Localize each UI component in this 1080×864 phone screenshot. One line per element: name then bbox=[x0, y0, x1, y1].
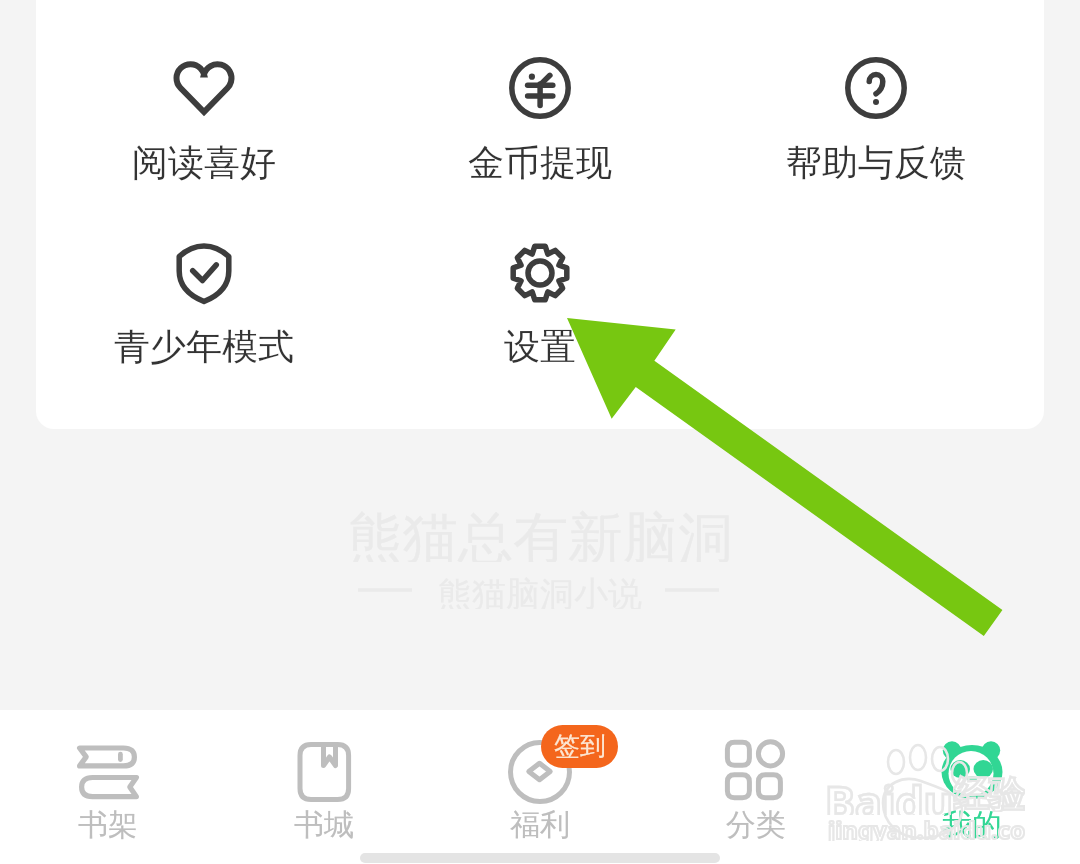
staticText: 分类 bbox=[726, 806, 786, 844]
staticText: 福利 bbox=[510, 806, 570, 844]
staticText: 我的 bbox=[942, 806, 1002, 844]
button[interactable]: 青少年模式 bbox=[36, 221, 372, 372]
staticText: 熊猫总有新脑洞 bbox=[348, 504, 733, 562]
staticText: 签到 bbox=[554, 730, 606, 763]
button[interactable]: 福利 bbox=[432, 710, 648, 864]
staticText: 经验 bbox=[953, 772, 1025, 812]
staticText: 书城 bbox=[294, 806, 354, 844]
button[interactable]: 书城 bbox=[216, 710, 432, 864]
button[interactable]: 书架 bbox=[0, 710, 216, 864]
staticText: jingyan.baidu.com bbox=[828, 813, 1038, 841]
button[interactable]: 我的 bbox=[864, 710, 1080, 864]
staticText: 设置 bbox=[504, 324, 576, 369]
staticText: 金币提现 bbox=[468, 140, 612, 185]
staticText: 阅读喜好 bbox=[132, 140, 276, 185]
button[interactable]: 金币提现 bbox=[372, 36, 708, 188]
staticText: 青少年模式 bbox=[114, 324, 294, 369]
button[interactable]: 分类 bbox=[648, 710, 864, 864]
staticText: 书架 bbox=[78, 806, 138, 844]
staticText: 帮助与反馈 bbox=[786, 140, 966, 185]
staticText: 熊猫脑洞小说 bbox=[438, 573, 642, 609]
button[interactable]: 阅读喜好 bbox=[36, 36, 372, 188]
button[interactable]: 签到 check in bbox=[541, 725, 618, 768]
staticText: Baidu bbox=[825, 771, 954, 815]
button[interactable]: 帮助与反馈 bbox=[708, 36, 1044, 188]
button[interactable]: 设置 bbox=[372, 221, 708, 372]
